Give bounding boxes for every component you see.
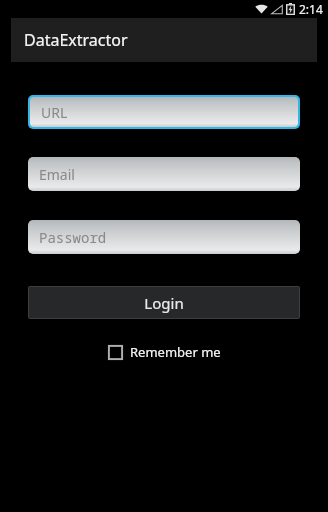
button[interactable]: Email — [28, 157, 300, 191]
button[interactable]: URL — [30, 97, 298, 127]
staticText: Login — [144, 293, 184, 313]
button[interactable]: Login — [29, 287, 299, 318]
button[interactable]: Password — [28, 220, 300, 254]
staticText: Email — [39, 165, 75, 184]
staticText: DataExtractor — [24, 29, 128, 51]
staticText: Remember me — [130, 343, 221, 361]
staticText: URL — [41, 103, 68, 122]
staticText: Password — [39, 228, 107, 247]
staticText: 2:14 — [299, 1, 323, 17]
button[interactable]: Remember me — [104, 341, 225, 363]
